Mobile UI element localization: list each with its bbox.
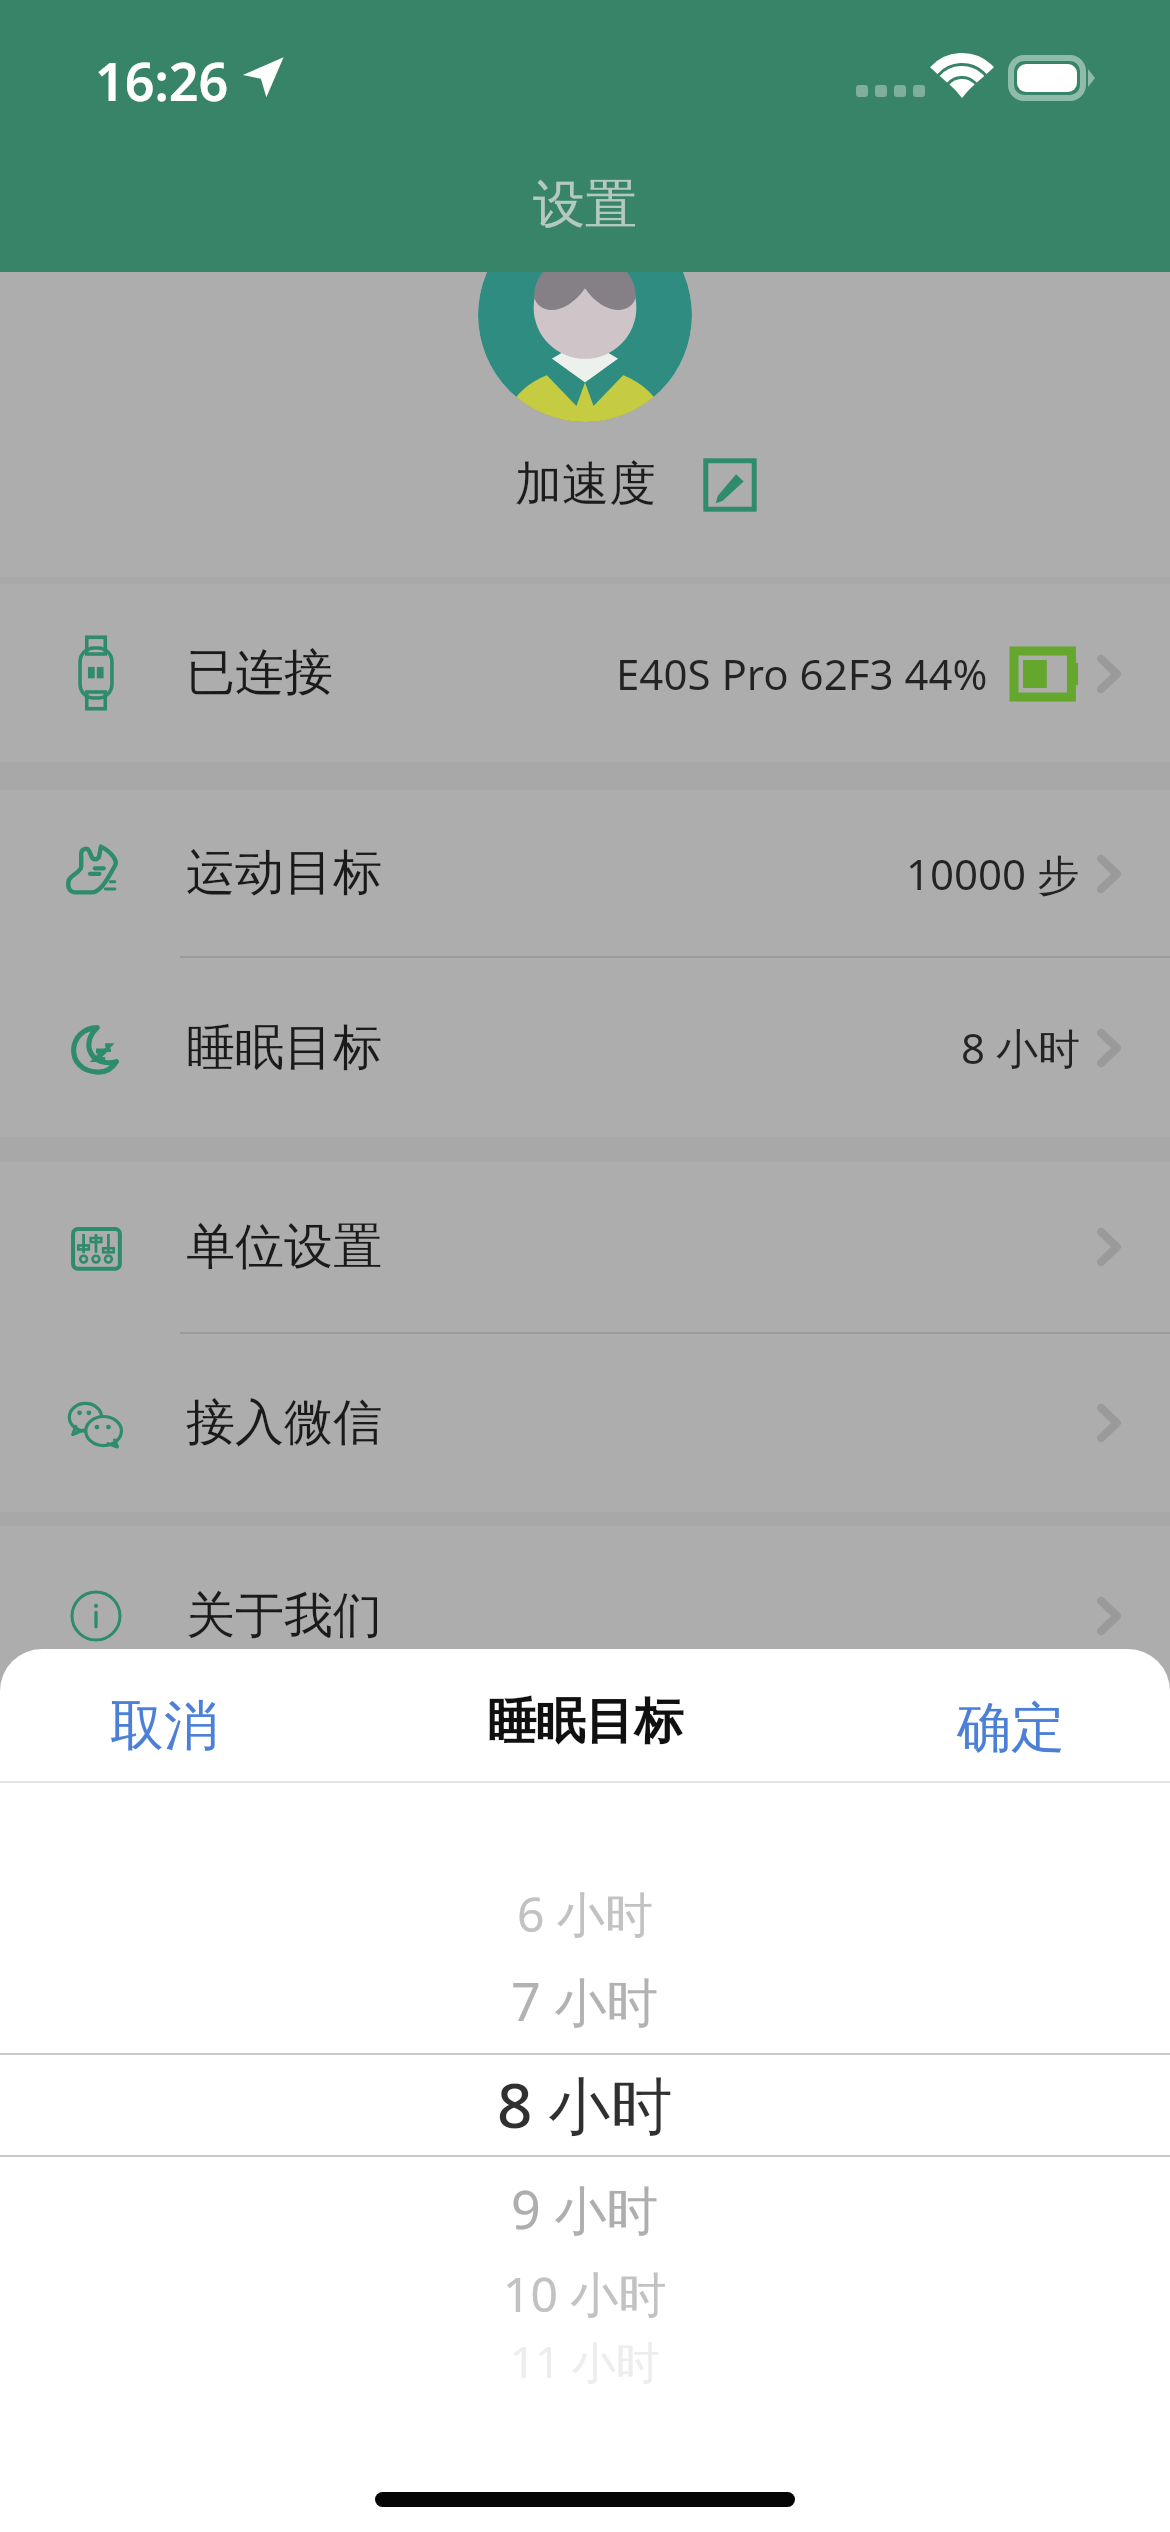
staticText: 8 小时 <box>961 1019 1080 1076</box>
button[interactable]: 单位设置 <box>0 1162 1170 1332</box>
button[interactable]: Edit name <box>701 456 759 514</box>
button[interactable]: 9 小时 <box>0 2158 1170 2258</box>
staticText: 8 小时 <box>497 2062 673 2147</box>
staticText: 6 小时 <box>517 1881 653 1947</box>
staticText: 加速度 <box>515 455 656 514</box>
staticText: 睡眠目标 <box>186 1017 382 1079</box>
staticText: 设置 <box>533 172 637 238</box>
button[interactable]: Profile picture <box>478 208 692 422</box>
staticText: 已连接 <box>186 642 333 704</box>
staticText: 运动目标 <box>186 842 382 904</box>
button[interactable]: 运动目标 <box>0 790 1170 956</box>
button[interactable]: 10 小时 <box>0 2244 1170 2344</box>
button[interactable]: 6 小时 <box>0 1864 1170 1964</box>
staticText: 10 小时 <box>503 2261 667 2327</box>
staticText: 关于我们 <box>186 1585 382 1647</box>
staticText: 10000 步 <box>906 845 1080 902</box>
staticText: 7 小时 <box>511 1965 659 2036</box>
button[interactable]: 睡眠目标 <box>0 958 1170 1137</box>
button[interactable]: 7 小时 <box>0 1950 1170 2050</box>
button[interactable]: 8 小时 <box>0 2054 1170 2154</box>
staticText: 确定 <box>957 1694 1065 1762</box>
staticText: E40S Pro 62F3 44% <box>616 645 988 702</box>
button[interactable]: 确定 <box>957 1694 1065 1762</box>
button[interactable]: 关于我们 <box>0 1526 1170 1706</box>
button[interactable]: 接入微信 <box>0 1334 1170 1512</box>
staticText: 11 小时 <box>510 2331 660 2391</box>
staticText: 9 小时 <box>511 2173 659 2244</box>
button[interactable]: 已连接 <box>0 584 1170 762</box>
staticText: 取消 <box>110 1692 218 1760</box>
staticText: 16:26 <box>95 45 229 116</box>
staticText: 睡眠目标 <box>487 1691 683 1753</box>
staticText: 接入微信 <box>186 1392 382 1454</box>
staticText: 单位设置 <box>186 1216 382 1278</box>
button[interactable]: 取消 <box>110 1692 218 1760</box>
